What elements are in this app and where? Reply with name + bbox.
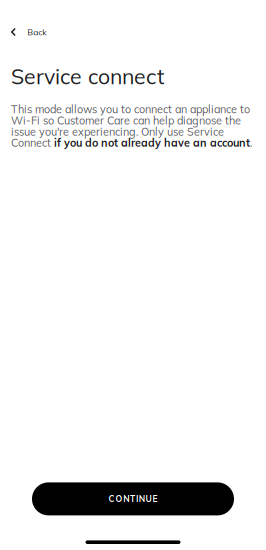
staticText: This mode allows you to connect an appli…	[11, 104, 252, 148]
button[interactable]: Back	[0, 21, 266, 43]
button[interactable]: CONTINUE	[32, 482, 234, 515]
staticText: Back	[27, 27, 46, 37]
staticText: Service connect	[11, 63, 164, 90]
staticText: CONTINUE	[108, 493, 157, 504]
